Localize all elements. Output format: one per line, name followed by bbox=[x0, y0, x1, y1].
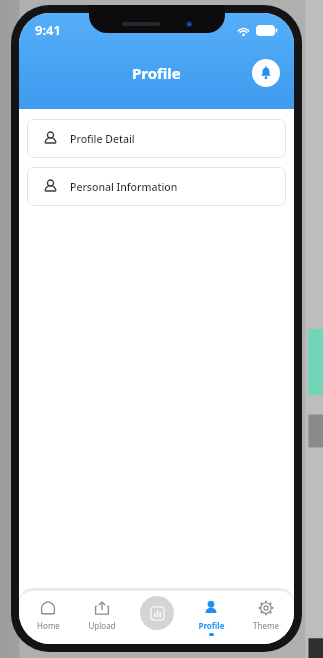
button[interactable]: Notifications bbox=[252, 59, 280, 87]
staticText: Personal Information bbox=[70, 180, 178, 194]
staticText: Profile bbox=[132, 63, 181, 83]
button[interactable]: Home bbox=[22, 598, 74, 631]
button[interactable]: Theme bbox=[240, 598, 292, 631]
button[interactable]: Upload bbox=[76, 598, 128, 631]
button[interactable]: Profile bbox=[185, 598, 237, 636]
staticText: 9:41 bbox=[35, 21, 61, 39]
button[interactable]: Statistics bbox=[131, 598, 183, 632]
staticText: Upload bbox=[88, 620, 116, 631]
staticText: Profile Detail bbox=[70, 132, 135, 146]
staticText: Theme bbox=[253, 620, 279, 631]
staticText: Profile bbox=[198, 620, 225, 631]
staticText: Home bbox=[37, 620, 60, 631]
button[interactable]: Profile Detail bbox=[27, 119, 286, 158]
button[interactable]: Personal Information bbox=[27, 167, 286, 206]
